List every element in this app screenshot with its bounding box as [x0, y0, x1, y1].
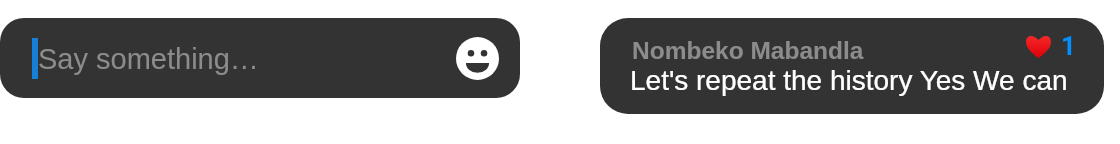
- button[interactable]: Say something…: [0, 18, 520, 98]
- staticText: 1: [1061, 31, 1076, 61]
- staticText: Nombeko Mabandla: [632, 37, 864, 64]
- button[interactable]: Insert emoji: [449, 30, 505, 86]
- button[interactable]: Nombeko Mabandla: [600, 18, 1104, 114]
- staticText: Let's repeat the history Yes We can: [630, 65, 1068, 96]
- staticText: Say something…: [38, 43, 259, 75]
